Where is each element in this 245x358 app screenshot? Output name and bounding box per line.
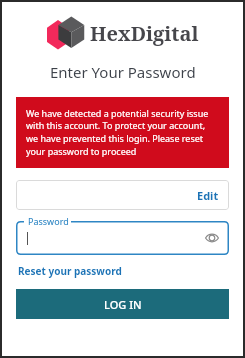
button[interactable]: LOG IN: [16, 289, 229, 319]
button[interactable]: Password: [16, 221, 229, 255]
staticText: LOG IN: [104, 297, 142, 312]
staticText: We have detected a potential security is…: [26, 107, 219, 158]
button[interactable]: Reset your password: [18, 264, 122, 278]
staticText: Enter Your Password: [50, 62, 196, 82]
staticText: Password: [28, 215, 69, 227]
button[interactable]: Edit: [16, 180, 229, 210]
staticText: Reset your password: [18, 264, 122, 278]
staticText: HexDigital: [90, 20, 199, 47]
staticText: Edit: [197, 188, 219, 203]
button[interactable]: Show password: [203, 229, 221, 247]
